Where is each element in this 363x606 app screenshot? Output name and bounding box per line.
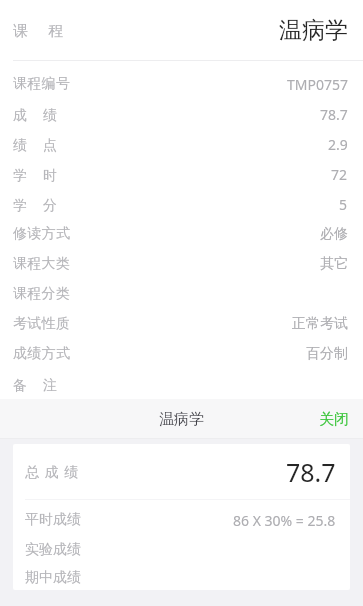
staticText: 百分制 — [306, 345, 348, 363]
staticText: 修读方式 — [13, 225, 71, 243]
button[interactable]: 期中成绩 — [13, 565, 350, 590]
staticText: 2.9 — [328, 135, 348, 154]
staticText: 平时成绩 — [25, 511, 81, 529]
button[interactable]: 总 成 绩 — [13, 444, 350, 499]
staticText: 学 分 — [13, 195, 58, 214]
button[interactable]: 平时成绩 — [13, 505, 350, 535]
staticText: 86 X 30% = 25.8 — [233, 511, 336, 530]
staticText: 5 — [339, 195, 348, 214]
button[interactable]: 实验成绩 — [13, 535, 350, 565]
button[interactable]: 修读方式 — [0, 219, 363, 249]
staticText: 温病学 — [159, 410, 204, 429]
staticText: 必修 — [320, 225, 348, 243]
button[interactable]: 学 时 — [0, 159, 363, 189]
staticText: 课程编号 — [13, 75, 71, 93]
staticText: TMP0757 — [287, 75, 348, 94]
button[interactable]: 成绩方式 — [0, 339, 363, 369]
button[interactable]: 课程编号 — [0, 69, 363, 99]
staticText: 课程大类 — [13, 255, 71, 273]
button[interactable]: 课 程 — [0, 0, 363, 60]
staticText: 成绩方式 — [13, 345, 71, 363]
button[interactable]: 课程大类 — [0, 249, 363, 279]
staticText: 学 时 — [13, 165, 58, 184]
button[interactable]: 成 绩 — [0, 99, 363, 129]
button[interactable]: 学 分 — [0, 189, 363, 219]
button[interactable]: 备 注 — [0, 369, 363, 399]
staticText: 正常考试 — [292, 315, 348, 333]
staticText: 考试性质 — [13, 315, 71, 333]
button[interactable]: 课程分类 — [0, 279, 363, 309]
button[interactable]: 绩 点 — [0, 129, 363, 159]
staticText: 绩 点 — [13, 135, 58, 154]
staticText: 总 成 绩 — [25, 462, 80, 481]
staticText: 备 注 — [13, 375, 58, 394]
button[interactable]: 关闭 — [305, 402, 363, 437]
staticText: 温病学 — [279, 16, 348, 45]
button[interactable]: 考试性质 — [0, 309, 363, 339]
staticText: 实验成绩 — [25, 541, 81, 559]
staticText: 关闭 — [319, 410, 349, 429]
staticText: 其它 — [320, 255, 348, 273]
staticText: 课程分类 — [13, 285, 71, 303]
staticText: 78.7 — [286, 455, 336, 489]
staticText: 78.7 — [320, 105, 348, 124]
staticText: 成 绩 — [13, 105, 58, 124]
staticText: 期中成绩 — [25, 569, 81, 587]
staticText: 课 程 — [13, 20, 65, 40]
staticText: 72 — [331, 165, 348, 184]
